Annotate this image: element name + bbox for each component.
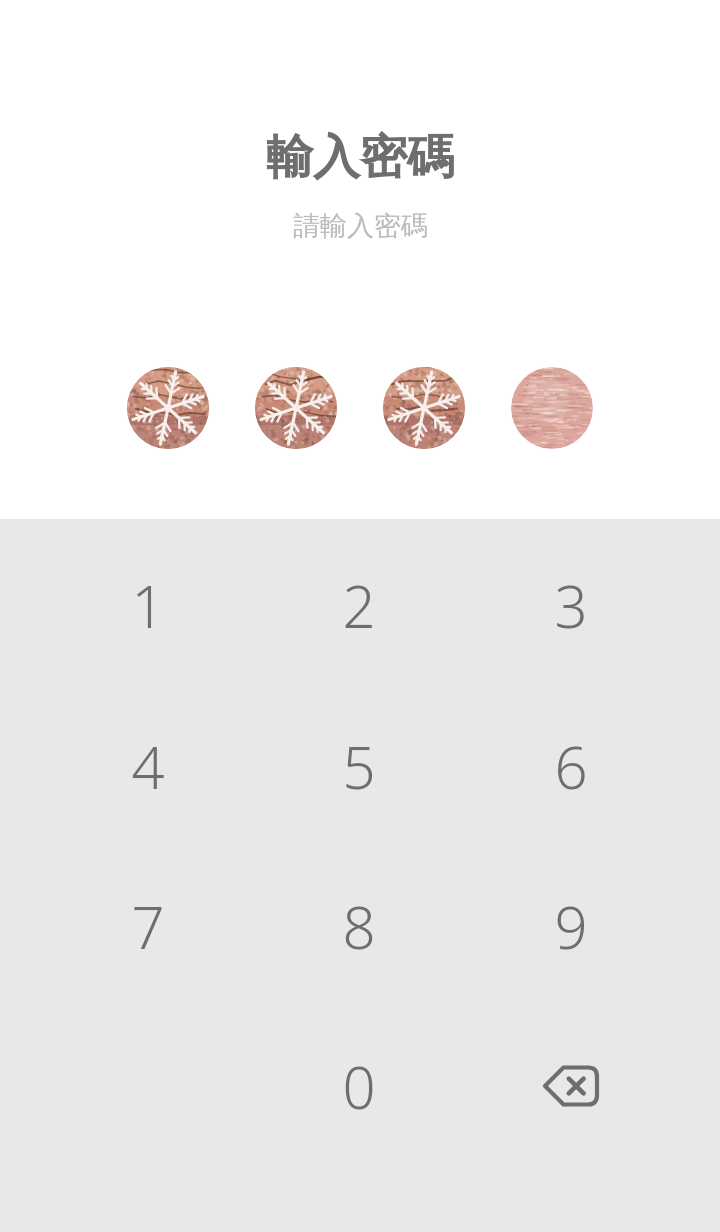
button[interactable]: Backspace [471, 1011, 671, 1161]
button[interactable]: 9 [471, 851, 671, 1001]
staticText: 請輸入密碼 [293, 209, 428, 243]
staticText: 6 [554, 727, 588, 806]
staticText: 7 [131, 887, 165, 966]
staticText: 輸入密碼 [266, 128, 454, 187]
staticText: 0 [342, 1047, 376, 1126]
button[interactable]: 8 [259, 851, 459, 1001]
staticText: 9 [554, 887, 588, 966]
button[interactable]: 5 [259, 691, 459, 841]
staticText: 8 [342, 887, 376, 966]
button[interactable]: 2 [259, 530, 459, 680]
button[interactable]: 7 [48, 851, 248, 1001]
staticText: 1 [131, 566, 165, 645]
staticText: 3 [554, 566, 588, 645]
button[interactable]: 6 [471, 691, 671, 841]
button[interactable]: 0 [259, 1011, 459, 1161]
button[interactable]: 1 [48, 530, 248, 680]
staticText: 5 [342, 727, 376, 806]
button[interactable]: 3 [471, 530, 671, 680]
staticText: 2 [342, 566, 376, 645]
staticText: 4 [131, 727, 165, 806]
button[interactable]: 4 [48, 691, 248, 841]
